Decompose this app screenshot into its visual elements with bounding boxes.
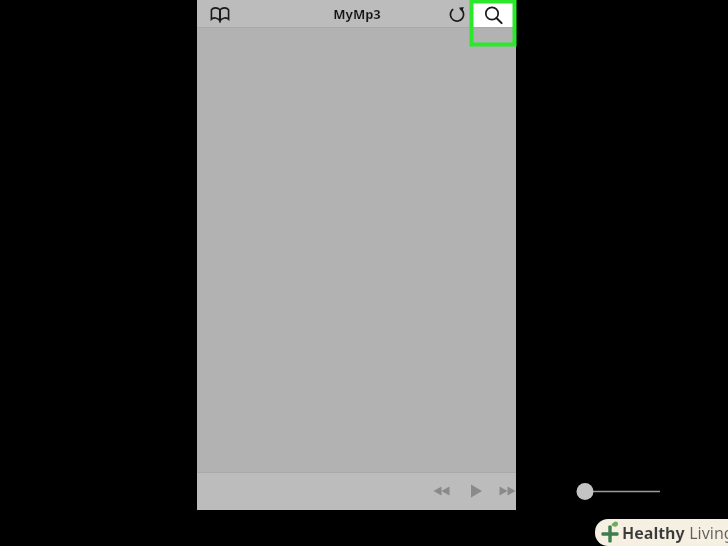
button[interactable]: Seek bar xyxy=(572,478,667,504)
staticText: MyMp3 xyxy=(333,5,381,23)
button[interactable]: Library xyxy=(207,1,233,27)
button[interactable]: Rewind xyxy=(431,480,453,502)
button[interactable]: Refresh xyxy=(446,3,468,25)
button[interactable]: Fast forward xyxy=(497,480,519,502)
button[interactable]: Play xyxy=(464,480,486,502)
button[interactable]: Search xyxy=(470,0,516,28)
staticText: Healthy xyxy=(622,522,685,544)
staticText: Living xyxy=(685,522,728,544)
